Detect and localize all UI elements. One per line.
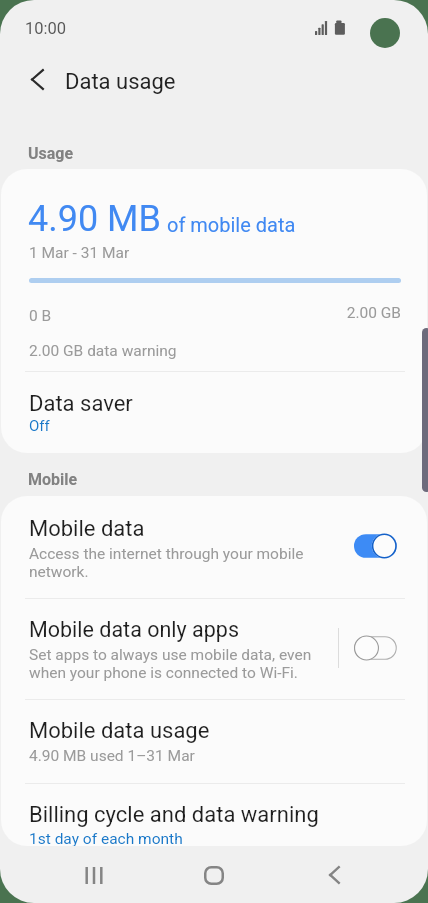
staticText: 2.00 GB — [301, 304, 401, 322]
staticText: 10:00 — [25, 19, 67, 38]
button[interactable]: Recents — [34, 847, 154, 903]
staticText: 4.90 MB used 1–31 Mar — [29, 747, 195, 765]
staticText: Mobile — [28, 470, 78, 489]
staticText: 1 Mar - 31 Mar — [29, 244, 130, 262]
button[interactable]: Mobile data only apps off — [354, 635, 397, 661]
staticText: 1st day of each month — [29, 830, 183, 846]
button[interactable]: Billing cycle and data warning — [1, 783, 427, 846]
staticText: Mobile data usage — [29, 718, 210, 744]
button[interactable]: Mobile data on — [354, 533, 397, 559]
staticText: Data saver — [29, 391, 133, 417]
staticText: Billing cycle and data warning — [29, 802, 319, 828]
button[interactable]: Mobile data — [1, 496, 427, 596]
staticText: Off — [29, 417, 50, 435]
button[interactable]: Back — [15, 57, 59, 101]
staticText: Usage — [28, 144, 74, 163]
staticText: Access the internet through your mobile … — [29, 545, 319, 581]
button[interactable]: Mobile data only apps — [1, 598, 427, 699]
staticText: Mobile data only apps — [29, 617, 239, 642]
button[interactable]: Back — [274, 847, 394, 903]
staticText: 0 B — [29, 307, 52, 325]
staticText: Set apps to always use mobile data, even… — [29, 646, 329, 682]
button[interactable]: Home — [154, 847, 274, 903]
staticText: Mobile data — [29, 516, 145, 542]
staticText: Data usage — [65, 69, 176, 95]
button[interactable]: Data saver — [1, 372, 427, 453]
staticText: 2.00 GB data warning — [29, 342, 177, 360]
staticText: 4.90 MB — [28, 198, 161, 240]
button[interactable]: Mobile data usage — [1, 700, 427, 782]
staticText: of mobile data — [167, 213, 296, 236]
